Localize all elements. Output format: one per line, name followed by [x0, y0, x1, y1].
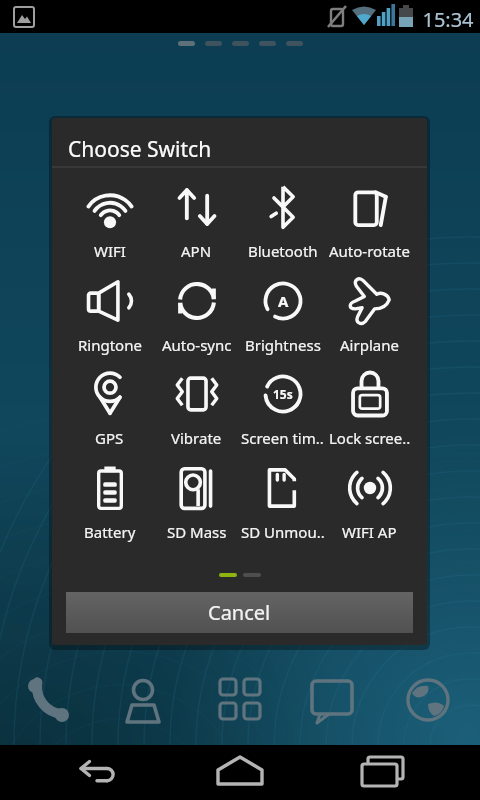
button[interactable]: SD Mass	[153, 456, 240, 548]
staticText: Lock scree..	[329, 428, 411, 448]
button[interactable]: Bluetooth	[239, 175, 326, 267]
staticText: WIFI AP	[342, 522, 397, 542]
staticText: A	[278, 291, 289, 311]
button[interactable]	[118, 672, 170, 728]
staticText: Battery	[84, 522, 136, 542]
button[interactable]: Battery	[66, 456, 153, 548]
staticText: 15s	[273, 386, 293, 402]
button[interactable]	[406, 672, 458, 728]
button[interactable]: A	[239, 269, 326, 361]
button[interactable]: APN	[153, 175, 240, 267]
staticText: SD Mass	[167, 522, 227, 542]
staticText: Vibrate	[171, 428, 222, 448]
staticText: WIFI	[94, 241, 126, 261]
staticText: Auto-rotate	[329, 241, 410, 261]
staticText: Brightness	[245, 335, 321, 355]
staticText: Cancel	[208, 599, 271, 626]
button[interactable]	[342, 745, 422, 800]
staticText: Ringtone	[78, 335, 142, 355]
staticText: Choose Switch	[68, 135, 318, 164]
button[interactable]: Vibrate	[153, 362, 240, 454]
staticText: Bluetooth	[248, 241, 318, 261]
staticText: APN	[181, 241, 212, 261]
button[interactable]: WIFI AP	[326, 456, 413, 548]
button[interactable]	[200, 745, 280, 800]
staticText: Screen tim..	[241, 428, 324, 448]
button[interactable]: Auto-sync	[153, 269, 240, 361]
button[interactable]	[22, 672, 74, 728]
button[interactable]: 15s	[239, 362, 326, 454]
staticText: SD Unmou..	[241, 522, 325, 542]
button[interactable]: Auto-rotate	[326, 175, 413, 267]
button[interactable]: WIFI	[66, 175, 153, 267]
button[interactable]	[63, 745, 143, 800]
staticText: 15:34	[419, 6, 477, 33]
button[interactable]: SD Unmou..	[239, 456, 326, 548]
button[interactable]: Airplane	[326, 269, 413, 361]
button[interactable]	[214, 672, 266, 728]
staticText: GPS	[95, 428, 124, 448]
staticText: Auto-sync	[162, 335, 232, 355]
button[interactable]: GPS	[66, 362, 153, 454]
button[interactable]	[310, 672, 362, 728]
button[interactable]: Ringtone	[66, 269, 153, 361]
button[interactable]: Cancel	[66, 592, 413, 633]
staticText: Airplane	[340, 335, 399, 355]
button[interactable]: Lock scree..	[326, 362, 413, 454]
